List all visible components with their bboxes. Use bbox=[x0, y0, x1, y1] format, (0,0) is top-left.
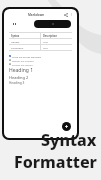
button[interactable]: Add bbox=[62, 122, 71, 131]
staticText: Syntax bbox=[41, 129, 97, 151]
button[interactable]: Write the syntax elements bbox=[9, 54, 72, 58]
button[interactable]: Format the results bbox=[9, 62, 72, 66]
staticText: Title bbox=[43, 40, 48, 43]
button[interactable]: Camera bbox=[34, 20, 71, 28]
button[interactable]: Render the content bbox=[9, 58, 72, 62]
staticText: Heading 3 bbox=[9, 81, 25, 85]
staticText: Paragraph bbox=[11, 46, 24, 49]
staticText: Heading 2 bbox=[9, 75, 29, 80]
button[interactable]: Pause bbox=[12, 22, 17, 26]
staticText: Write the syntax elements bbox=[12, 55, 42, 58]
staticText: Render the content bbox=[12, 59, 34, 62]
staticText: Syntax bbox=[11, 34, 20, 37]
button[interactable]: More options bbox=[69, 12, 74, 17]
staticText: Format the results bbox=[12, 63, 33, 66]
staticText: Header bbox=[11, 40, 20, 43]
staticText: Text bbox=[43, 46, 48, 49]
button[interactable]: Share bbox=[63, 12, 69, 18]
staticText: Description bbox=[43, 34, 57, 37]
staticText: Markdown bbox=[28, 13, 45, 17]
staticText: Heading 1 bbox=[9, 67, 34, 74]
staticText: Formatter bbox=[14, 151, 97, 173]
